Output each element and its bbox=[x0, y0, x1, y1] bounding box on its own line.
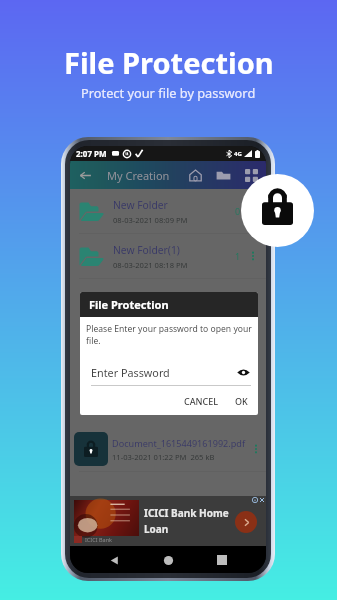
staticText: 0 bbox=[235, 205, 241, 217]
staticText: ICICI Bank bbox=[85, 536, 112, 543]
staticText: Document_1615449161992.pdf bbox=[112, 437, 246, 449]
button[interactable]: CANCEL bbox=[180, 393, 223, 409]
staticText: OK bbox=[235, 395, 248, 407]
button[interactable]: Show password bbox=[236, 365, 251, 380]
button[interactable]: Back bbox=[104, 550, 124, 570]
staticText: CANCEL bbox=[184, 395, 219, 407]
staticText: ICICI Bank Home bbox=[144, 506, 229, 520]
staticText: My Creation bbox=[107, 168, 170, 183]
button[interactable]: Enter Password bbox=[91, 365, 251, 380]
button[interactable]: Home bbox=[185, 165, 205, 185]
staticText: 1 bbox=[235, 250, 241, 262]
button[interactable]: More options bbox=[247, 250, 259, 262]
button[interactable]: Grid view bbox=[241, 165, 261, 185]
button[interactable]: More options bbox=[250, 443, 262, 455]
button[interactable]: New Folder(1) bbox=[70, 234, 266, 278]
button[interactable]: ICICI Bank bbox=[70, 496, 266, 546]
staticText: New Folder bbox=[113, 198, 168, 212]
staticText: 2:07 PM bbox=[76, 148, 107, 159]
staticText: 4G bbox=[234, 150, 242, 158]
staticText: Enter Password bbox=[91, 365, 170, 380]
staticText: File Protection bbox=[64, 43, 274, 82]
staticText: File Protection bbox=[89, 297, 169, 312]
button[interactable]: New Folder bbox=[70, 189, 266, 233]
staticText: New Folder(1) bbox=[113, 243, 180, 257]
staticText: 08-03-2021 08:09 PM bbox=[113, 215, 188, 225]
button[interactable]: Home bbox=[158, 550, 178, 570]
button[interactable]: Document_1615449161992.pdf bbox=[70, 427, 266, 471]
button[interactable]: Open advertisement bbox=[235, 511, 257, 533]
button[interactable]: Recents bbox=[212, 550, 232, 570]
button[interactable]: Back bbox=[74, 164, 96, 186]
staticText: Loan bbox=[144, 522, 169, 536]
staticText: Please Enter your password to open your … bbox=[86, 323, 252, 347]
staticText: 08-03-2021 08:18 PM bbox=[113, 260, 188, 270]
staticText: Protect your file by password bbox=[81, 84, 256, 101]
button[interactable]: Folders bbox=[213, 165, 233, 185]
button[interactable]: File lock bbox=[241, 174, 314, 247]
button[interactable]: OK bbox=[231, 393, 252, 409]
staticText: 11-03-2021 01:22 PM 265 kB bbox=[112, 452, 215, 462]
